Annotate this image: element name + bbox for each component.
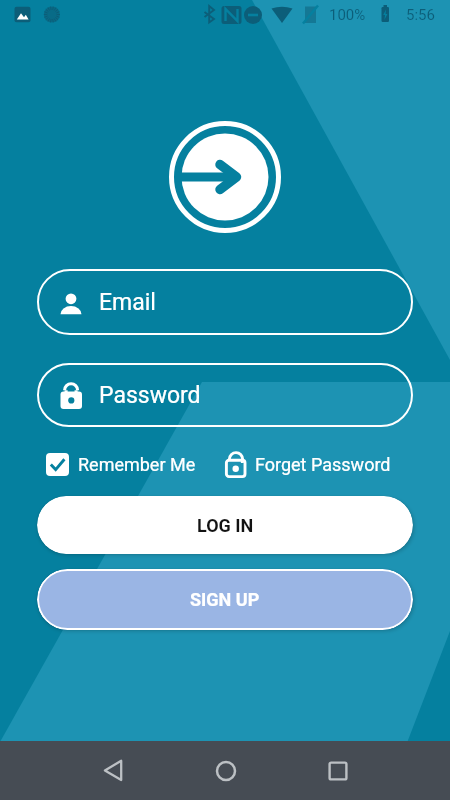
staticText: 5:56 [406, 6, 435, 24]
staticText: Email [99, 289, 156, 316]
button[interactable]: Forget Password [225, 447, 391, 481]
staticText: SIGN UP [190, 589, 260, 610]
button[interactable]: LOG IN [37, 496, 413, 554]
staticText: Password [99, 382, 201, 409]
staticText: LOG IN [197, 515, 254, 536]
staticText: Forget Password [255, 454, 391, 475]
button[interactable]: Recent apps [315, 748, 360, 793]
button[interactable]: Email [37, 269, 413, 335]
button[interactable]: Home [203, 748, 248, 793]
button[interactable]: SIGN UP [37, 569, 413, 630]
staticText: Remember Me [78, 454, 196, 475]
button[interactable]: Password [37, 363, 413, 427]
staticText: 100% [329, 6, 366, 24]
button[interactable]: Back [90, 748, 135, 793]
button[interactable]: Remember Me [46, 447, 196, 481]
